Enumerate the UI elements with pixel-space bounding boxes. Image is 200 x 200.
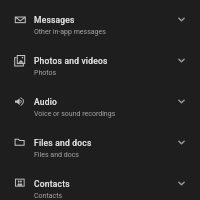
button[interactable]: Audio (0, 82, 200, 123)
staticText: Other in-app messages (34, 28, 106, 36)
button[interactable]: Messages (0, 0, 200, 41)
staticText: Messages (34, 15, 75, 25)
other: Expand Photos and videos (178, 58, 185, 63)
staticText: Files and docs (34, 138, 92, 148)
staticText: Photos (34, 69, 57, 77)
staticText: Audio (34, 97, 58, 107)
staticText: Files and docs (34, 151, 79, 159)
staticText: Contacts (34, 179, 70, 189)
other: Expand Contacts (178, 181, 185, 186)
other: Expand Audio (178, 99, 185, 104)
other: Expand Messages (178, 17, 185, 22)
other: Expand Files and docs (178, 140, 185, 145)
staticText: Voice or sound recordings (34, 110, 116, 118)
button[interactable]: Contacts (0, 164, 200, 200)
button[interactable]: Files and docs (0, 123, 200, 164)
staticText: Contacts (34, 192, 63, 200)
button[interactable]: Photos and videos (0, 41, 200, 82)
staticText: Photos and videos (34, 56, 108, 66)
